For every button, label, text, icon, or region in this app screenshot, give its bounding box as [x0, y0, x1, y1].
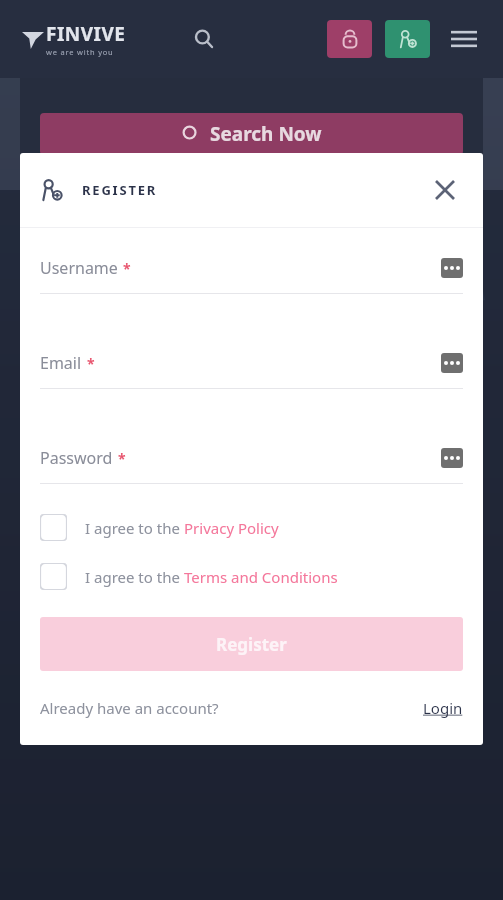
staticText: *: [123, 259, 131, 278]
button[interactable]: Username: [40, 257, 463, 294]
staticText: Login: [423, 698, 463, 718]
staticText: Category: [40, 40, 109, 62]
staticText: Password: [40, 447, 113, 469]
button[interactable]: Category: [40, 40, 463, 62]
button[interactable]: Login: [327, 20, 372, 58]
button[interactable]: Login: [423, 698, 463, 718]
staticText: *: [118, 449, 126, 468]
button[interactable]: Search Now: [40, 113, 463, 155]
staticText: Register: [216, 633, 287, 656]
staticText: Already have an account?: [40, 698, 219, 718]
staticText: Email: [40, 352, 82, 374]
button[interactable]: Menu: [447, 22, 481, 56]
button[interactable]: Email: [40, 352, 463, 389]
staticText: Search Now: [210, 121, 322, 147]
button[interactable]: Finvive home: [22, 21, 126, 57]
button[interactable]: Search: [184, 19, 224, 59]
button[interactable]: Close: [427, 172, 463, 208]
button[interactable]: Register: [40, 617, 463, 671]
staticText: FINVIVE: [46, 21, 126, 47]
staticText: *: [87, 354, 95, 373]
staticText: REGISTER: [82, 181, 158, 199]
staticText: Terms and Conditions: [184, 567, 338, 587]
button[interactable]: I agree to the: [40, 563, 463, 590]
staticText: I agree to the: [85, 567, 184, 587]
staticText: Username: [40, 257, 118, 279]
button[interactable]: I agree to the: [40, 514, 463, 541]
button[interactable]: Password: [40, 447, 463, 484]
staticText: Privacy Policy: [184, 518, 279, 538]
staticText: we are with you: [46, 47, 114, 57]
button[interactable]: Register: [385, 20, 430, 58]
staticText: I agree to the: [85, 518, 184, 538]
